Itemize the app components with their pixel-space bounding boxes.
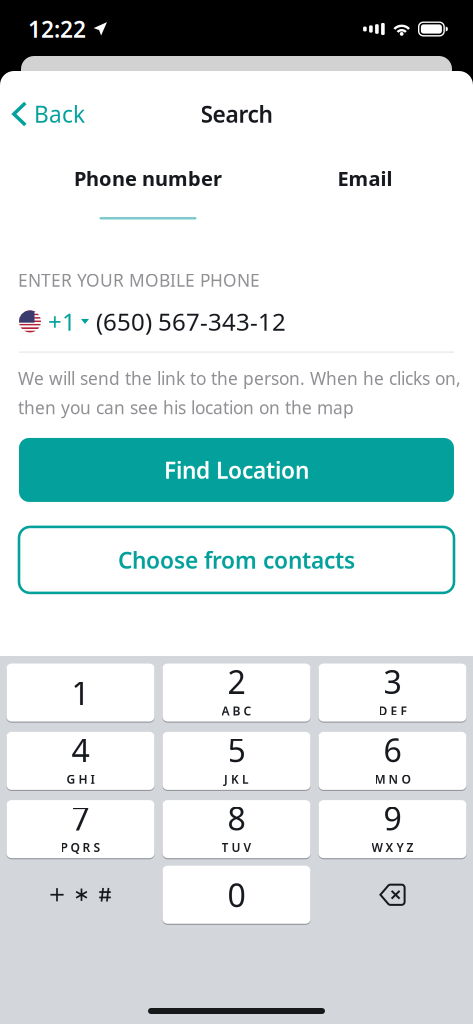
button[interactable]: Symbols — [6, 866, 154, 924]
button[interactable]: Choose from contacts — [19, 527, 454, 593]
staticText: 0 — [227, 873, 245, 916]
button[interactable]: 5 — [162, 731, 310, 790]
button[interactable]: Phone number — [68, 165, 228, 219]
staticText: J K L — [224, 771, 249, 787]
button[interactable]: 8 — [162, 800, 310, 859]
staticText: 7 — [71, 797, 89, 839]
staticText: P Q R S — [60, 839, 100, 855]
staticText: Choose from contacts — [118, 545, 355, 575]
staticText: 12:22 — [28, 14, 86, 44]
button[interactable]: 6 — [318, 731, 466, 790]
staticText: +1 — [48, 305, 76, 337]
staticText: 6 — [383, 729, 401, 771]
button[interactable]: 0 — [162, 865, 310, 924]
button[interactable]: 2 — [162, 663, 310, 722]
button[interactable]: Delete — [318, 866, 466, 924]
staticText: 8 — [227, 797, 245, 839]
staticText: A B C — [221, 703, 251, 719]
staticText: 5 — [227, 729, 245, 771]
staticText: Search — [200, 99, 272, 129]
staticText: T U V — [221, 839, 251, 855]
staticText: ENTER YOUR MOBILE PHONE — [18, 268, 260, 291]
staticText: D E F — [378, 703, 406, 719]
button[interactable]: Find Location — [19, 438, 454, 502]
button[interactable]: Back — [0, 91, 97, 137]
staticText: 3 — [383, 660, 401, 703]
staticText: M N O — [374, 771, 410, 787]
staticText: Back — [34, 99, 85, 129]
button[interactable]: 7 — [6, 800, 154, 859]
staticText: 1 — [71, 671, 89, 714]
staticText: (650) 567-343-12 — [96, 305, 286, 337]
button[interactable]: 3 — [318, 663, 466, 722]
button[interactable]: Email — [310, 165, 420, 187]
staticText: 2 — [227, 660, 245, 703]
staticText: Email — [337, 165, 392, 192]
staticText: Phone number — [74, 165, 222, 192]
staticText: Find Location — [164, 455, 309, 485]
staticText: We will send the link to the person. Whe… — [18, 367, 461, 419]
staticText: G H I — [66, 771, 94, 787]
button[interactable]: 9 — [318, 800, 466, 859]
staticText: 9 — [383, 797, 401, 839]
button[interactable]: 1 — [6, 663, 154, 722]
staticText: 4 — [71, 729, 89, 771]
button[interactable]: 4 — [6, 731, 154, 790]
staticText: W X Y Z — [371, 839, 413, 855]
